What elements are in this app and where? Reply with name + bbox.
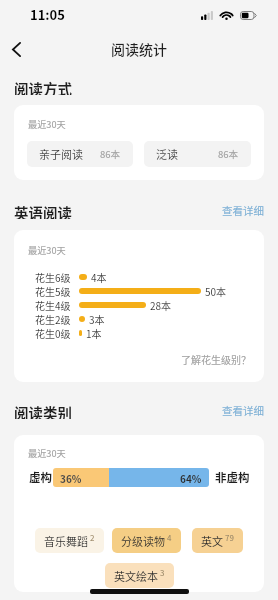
staticText: 4本 xyxy=(91,270,107,284)
staticText: 查看详细 xyxy=(222,203,264,218)
button[interactable]: 泛读 xyxy=(144,141,251,167)
staticText: 36% xyxy=(60,471,82,485)
staticText: 2 xyxy=(90,532,95,544)
button[interactable]: 返回 xyxy=(1,34,31,64)
button[interactable]: 查看详细 xyxy=(222,203,264,218)
staticText: 阅读统计 xyxy=(111,39,167,59)
staticText: 阅读方式 xyxy=(14,78,72,95)
staticText: 3本 xyxy=(89,312,105,326)
button[interactable]: 英文 xyxy=(192,528,243,553)
staticText: 了解花生级别？ xyxy=(181,352,251,366)
button[interactable]: 亲子阅读 xyxy=(27,141,133,167)
staticText: 4 xyxy=(167,532,172,544)
staticText: 64% xyxy=(180,471,202,485)
staticText: 50本 xyxy=(205,284,227,298)
staticText: 28本 xyxy=(150,298,172,312)
staticText: 3 xyxy=(160,567,165,579)
staticText: 79 xyxy=(225,532,234,544)
staticText: 英文绘本 xyxy=(114,568,158,584)
staticText: 花生5级 xyxy=(35,284,79,298)
staticText: 花生0级 xyxy=(35,326,79,340)
staticText: 11:05 xyxy=(30,5,65,24)
staticText: 虚构 xyxy=(29,469,52,486)
button[interactable]: 音乐舞蹈 xyxy=(35,528,104,553)
button[interactable]: 英文绘本 xyxy=(105,563,174,588)
staticText: 花生6级 xyxy=(35,270,79,284)
staticText: 1本 xyxy=(86,326,102,340)
staticText: 英文 xyxy=(201,533,223,549)
staticText: 英语阅读 xyxy=(14,202,72,219)
staticText: 亲子阅读 xyxy=(39,146,83,162)
staticText: 分级读物 xyxy=(121,533,165,549)
staticText: 最近30天 xyxy=(28,117,66,130)
staticText: 阅读类别 xyxy=(14,402,72,419)
button[interactable]: 分级读物 xyxy=(112,528,181,553)
staticText: 最近30天 xyxy=(28,446,66,459)
staticText: 最近30天 xyxy=(28,243,66,256)
button[interactable]: 了解花生级别？ xyxy=(181,352,251,366)
staticText: 音乐舞蹈 xyxy=(44,533,88,549)
staticText: 86本 xyxy=(100,147,121,161)
staticText: 查看详细 xyxy=(222,403,264,418)
staticText: 花生2级 xyxy=(35,312,79,326)
staticText: 花生4级 xyxy=(35,298,79,312)
button[interactable]: 查看详细 xyxy=(222,403,264,418)
staticText: 86本 xyxy=(218,147,239,161)
staticText: 泛读 xyxy=(156,146,178,162)
staticText: 非虚构 xyxy=(215,469,250,486)
